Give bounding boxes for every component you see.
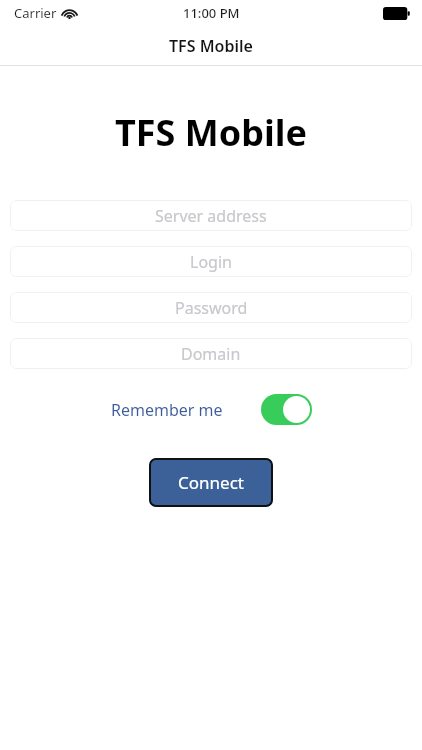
button[interactable]: Server address [10,200,412,231]
button[interactable]: Domain [10,338,412,369]
staticText: TFS Mobile [0,108,422,157]
staticText: Connect [178,471,244,494]
button[interactable]: Remember me [111,399,223,421]
staticText: Domain [181,343,241,365]
staticText: Password [175,297,248,319]
button[interactable]: Connect [149,458,273,507]
staticText: Server address [155,205,267,227]
staticText: TFS Mobile [169,35,253,57]
button[interactable]: Password [10,292,412,323]
button[interactable]: Login [10,246,412,277]
staticText: Carrier [14,4,57,22]
button[interactable]: Remember me toggle [261,394,312,425]
staticText: Login [190,251,232,273]
staticText: 11:00 PM [183,4,240,22]
